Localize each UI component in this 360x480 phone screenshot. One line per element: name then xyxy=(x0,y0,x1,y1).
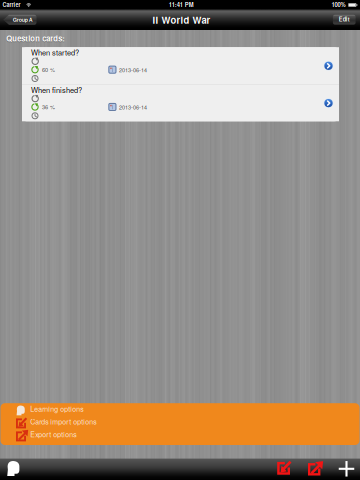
staticText: Edit xyxy=(339,15,350,23)
staticText: 11:41 PM xyxy=(169,0,194,9)
staticText: Carrier xyxy=(3,1,21,9)
staticText: Export options xyxy=(30,429,76,439)
staticText: Group A xyxy=(13,16,33,23)
staticText: 2013-06-14 xyxy=(119,66,147,74)
staticText: 60 % xyxy=(42,66,55,74)
button[interactable] xyxy=(0,403,359,445)
button[interactable]: Edit xyxy=(333,15,356,25)
button[interactable]: Import cards xyxy=(274,458,294,479)
button[interactable]: Comments xyxy=(3,458,23,479)
staticText: II World War xyxy=(152,13,210,27)
button[interactable]: Export cards xyxy=(304,459,324,480)
staticText: Learning options xyxy=(30,404,83,414)
staticText: When started? xyxy=(31,47,79,58)
staticText: Question cards: xyxy=(6,33,65,44)
staticText: Cards import options xyxy=(30,417,96,426)
button[interactable]: Add card xyxy=(336,458,356,479)
staticText: 2013-06-14 xyxy=(119,103,147,111)
staticText: Question cards: xyxy=(6,34,65,45)
staticText: When finished? xyxy=(31,84,82,95)
staticText: 36 % xyxy=(42,103,55,111)
button[interactable]: When started? xyxy=(22,47,339,84)
staticText: 100% xyxy=(331,0,345,9)
button[interactable] xyxy=(0,403,359,445)
button[interactable]: Group A xyxy=(3,15,36,25)
button[interactable]: When finished? xyxy=(22,84,339,121)
button[interactable] xyxy=(0,403,359,445)
